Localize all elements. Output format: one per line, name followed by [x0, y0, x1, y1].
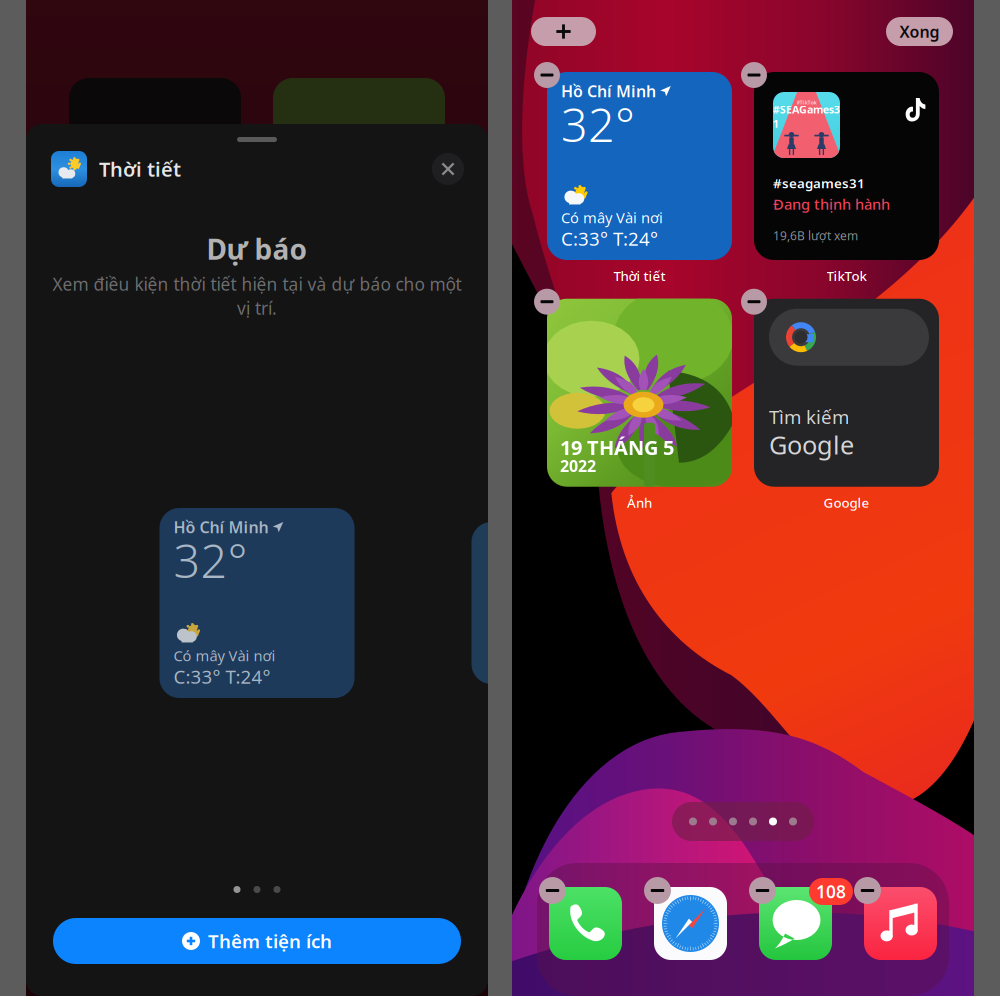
- staticText: Xem điều kiện thời tiết hiện tại và dự b…: [52, 272, 461, 295]
- staticText: Dự báo: [206, 230, 307, 268]
- staticText: Hồ Chí Minh: [173, 516, 268, 538]
- staticText: Tìm kiếm: [769, 404, 849, 429]
- staticText: C:33° T:24°: [561, 226, 658, 251]
- staticText: Có mây Vài nơi: [173, 646, 275, 665]
- button[interactable]: Google: [754, 299, 939, 487]
- staticText: C:33° T:24°: [173, 664, 270, 689]
- button[interactable]: Thời tiết: [547, 72, 732, 260]
- button[interactable]: Nhạc: [864, 887, 937, 960]
- staticText: #TikTok: [796, 99, 816, 106]
- staticText: Thời tiết: [99, 156, 181, 182]
- staticText: #seagames31: [773, 174, 865, 192]
- staticText: #SEAGames31: [773, 102, 840, 131]
- button[interactable]: Xóa Ảnh: [547, 299, 573, 325]
- button[interactable]: TikTok: [754, 72, 939, 260]
- staticText: 32°: [561, 93, 635, 155]
- staticText: Hồ Chí Minh: [561, 80, 656, 102]
- staticText: 19 THÁNG 5: [560, 434, 674, 460]
- staticText: Thêm tiện ích: [208, 929, 332, 953]
- staticText: Đang thịnh hành: [773, 194, 890, 214]
- button[interactable]: Xóa Thời tiết: [547, 72, 573, 98]
- staticText: Ảnh: [627, 494, 652, 511]
- button[interactable]: Đóng: [432, 153, 464, 185]
- staticText: TikTok: [826, 267, 866, 285]
- button[interactable]: Xong: [886, 17, 953, 46]
- staticText: vị trí.: [237, 296, 277, 319]
- staticText: Có mây Vài nơi: [561, 208, 663, 227]
- button[interactable]: Điện thoại: [549, 887, 622, 960]
- staticText: Xong: [899, 21, 939, 42]
- button[interactable]: Thêm tiện ích: [53, 918, 461, 964]
- staticText: Google: [823, 494, 869, 511]
- staticText: 32°: [173, 529, 247, 591]
- staticText: Google: [769, 428, 854, 461]
- button[interactable]: Xóa Google: [754, 299, 780, 325]
- button[interactable]: Safari: [654, 887, 727, 960]
- staticText: Thời tiết: [613, 267, 665, 285]
- button[interactable]: Ảnh: [547, 299, 732, 487]
- staticText: 2022: [560, 455, 596, 476]
- staticText: 19,6B lượt xem: [773, 227, 858, 243]
- button[interactable]: Xóa TikTok: [754, 72, 780, 98]
- button[interactable]: Thêm tiện ích: [531, 17, 596, 46]
- staticText: 108: [816, 880, 846, 903]
- button[interactable]: Tin nhắn: [759, 887, 832, 960]
